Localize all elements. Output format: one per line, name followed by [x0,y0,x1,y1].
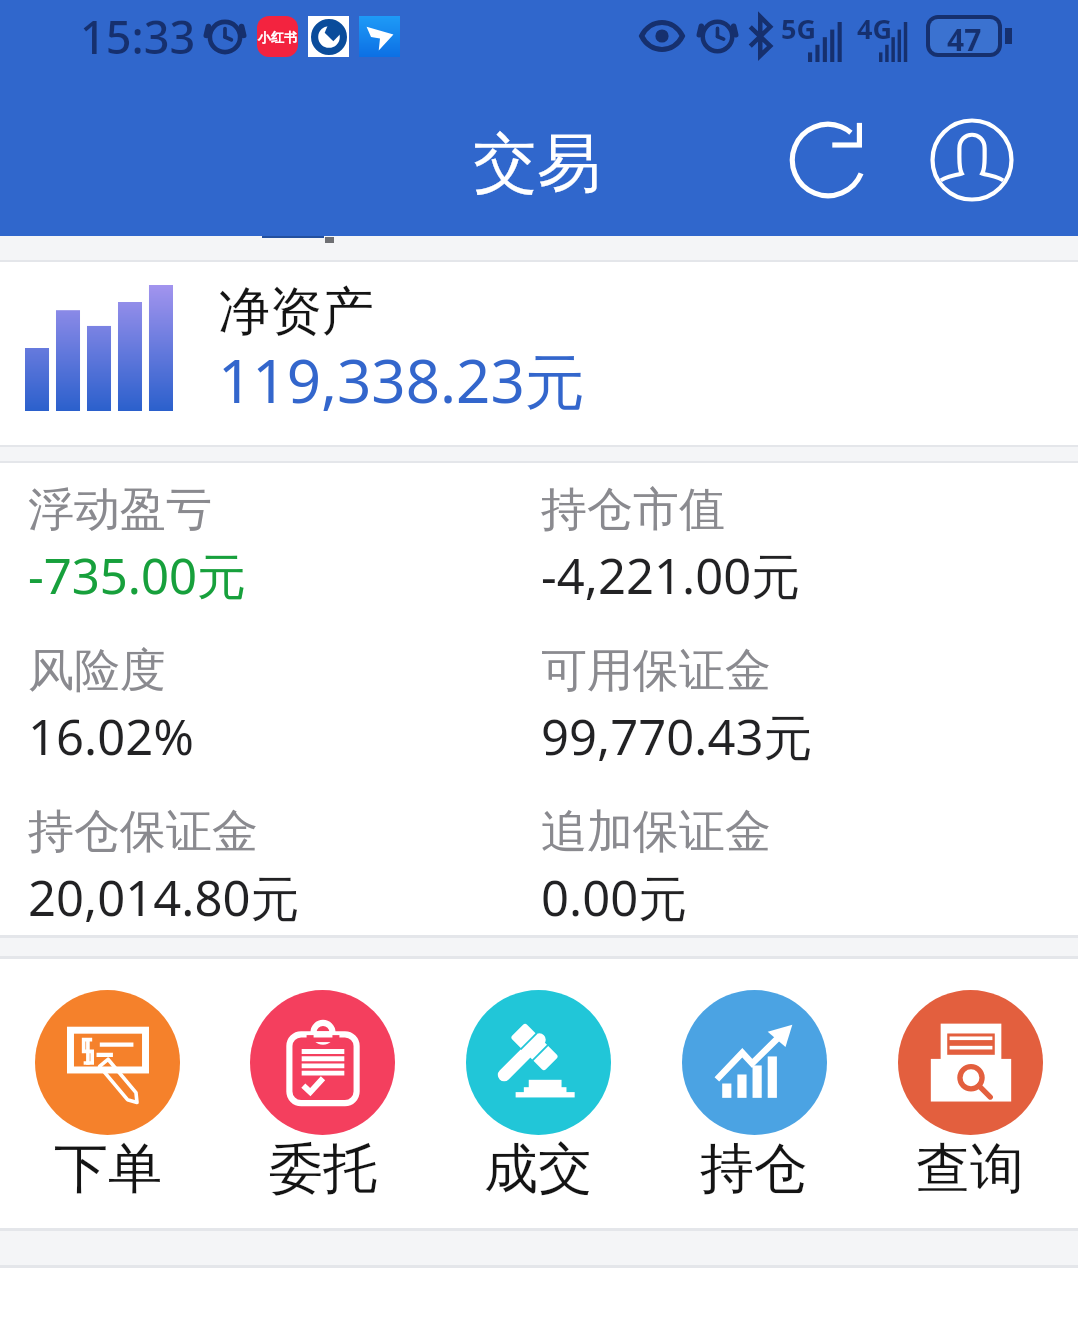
staticText: 20,014.80元 [28,864,300,931]
staticText: 浮动盈亏 [28,481,212,539]
staticText: 15:33 [80,6,196,67]
staticText: 99,770.43元 [541,703,813,770]
staticText: 成交 [484,1135,592,1203]
staticText: 净资产 [218,279,374,345]
staticText: 持仓市值 [541,481,725,539]
button[interactable]: 成交 [430,990,646,1203]
staticText: 119,338.23元 [218,339,585,421]
staticText: -4,221.00元 [541,542,801,609]
staticText: 风险度 [28,642,166,700]
staticText: 委托 [269,1135,377,1203]
button[interactable]: 委托 [215,990,430,1203]
staticText: 5G [781,10,816,47]
button[interactable]: 查询 [862,990,1078,1203]
staticText: 0.00元 [541,864,688,931]
button[interactable]: Account [923,111,1021,209]
staticText: 查询 [916,1135,1024,1203]
button[interactable]: Refresh [779,111,877,209]
staticText: 持仓保证金 [28,803,258,861]
staticText: 可用保证金 [541,642,771,700]
staticText: 持仓 [700,1135,808,1203]
staticText: 47 [947,19,982,53]
staticText: 16.02% [28,703,194,770]
staticText: 4G [857,10,892,47]
staticText: 下单 [54,1135,162,1203]
staticText: -735.00元 [28,542,247,609]
staticText: 追加保证金 [541,803,771,861]
button[interactable]: 下单 [0,990,215,1203]
staticText: 小红书 [258,29,297,45]
button[interactable]: 净资产 [0,262,1078,445]
button[interactable]: 持仓 [646,990,862,1203]
staticText: 交易 [473,123,601,204]
